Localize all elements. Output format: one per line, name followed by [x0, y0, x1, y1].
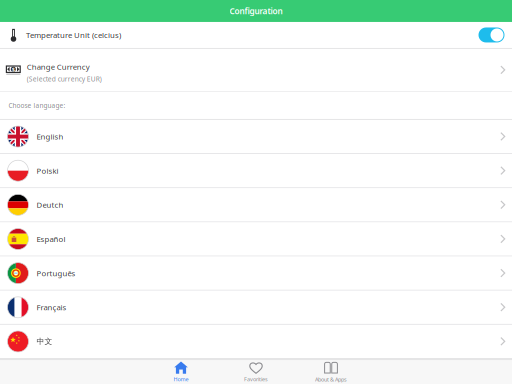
- staticText: English: [36, 131, 63, 142]
- staticText: 中文: [36, 337, 52, 346]
- button[interactable]: English: [0, 120, 512, 154]
- staticText: About & Apps: [315, 376, 347, 383]
- staticText: Español: [36, 234, 65, 244]
- staticText: (Selected currency EUR): [27, 74, 102, 83]
- staticText: Choose language:: [9, 101, 66, 110]
- button[interactable]: Deutch: [0, 188, 512, 222]
- staticText: Favorities: [244, 375, 268, 383]
- button[interactable]: Home: [143, 360, 218, 384]
- staticText: $: [12, 65, 15, 73]
- staticText: Configuration: [229, 5, 282, 17]
- staticText: Français: [36, 302, 66, 312]
- button[interactable]: 中文: [0, 325, 512, 359]
- button[interactable]: Français: [0, 291, 512, 325]
- button[interactable]: Favorities: [218, 360, 293, 384]
- button[interactable]: Español: [0, 222, 512, 256]
- button[interactable]: Português: [0, 257, 512, 291]
- button[interactable]: Temperature Unit (celcius): [0, 22, 512, 49]
- button[interactable]: $: [0, 49, 512, 92]
- staticText: Temperature Unit (celcius): [26, 30, 121, 40]
- button[interactable]: Polski: [0, 154, 512, 188]
- button[interactable]: About & Apps: [293, 360, 368, 384]
- staticText: Deutch: [36, 200, 63, 210]
- staticText: Home: [173, 375, 188, 383]
- staticText: Change Currency: [27, 61, 90, 72]
- staticText: Polski: [36, 165, 58, 176]
- staticText: Português: [36, 268, 75, 278]
